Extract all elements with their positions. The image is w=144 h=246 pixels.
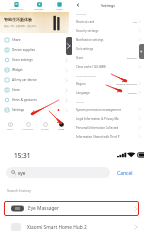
button[interactable]: Search xyxy=(54,1,65,12)
staticText: Product Info xyxy=(10,8,23,11)
button[interactable]: Notification settings xyxy=(72,35,144,44)
button[interactable]: Product Info xyxy=(8,1,25,12)
button[interactable]: Store xyxy=(72,53,144,62)
staticText: Xiaomi Smart Home Hub 2 xyxy=(27,224,87,231)
button[interactable]: Device supplies xyxy=(0,45,72,55)
staticText: Device xyxy=(7,128,14,131)
button[interactable]: Feedback xyxy=(139,44,144,59)
button[interactable]: Legal Information & Privacy Ma xyxy=(72,114,144,123)
button[interactable]: Information Shared with Third P xyxy=(72,132,144,141)
button[interactable]: eye xyxy=(6,167,110,178)
button[interactable]: Eye Massager xyxy=(0,201,144,216)
staticText: Language xyxy=(76,91,90,95)
staticText: Automation xyxy=(22,128,34,131)
staticText: Eye Massager xyxy=(28,205,60,212)
staticText: Privacy xyxy=(76,100,84,103)
button[interactable]: Device xyxy=(6,122,15,131)
button[interactable]: Clear cache (126.6MB) xyxy=(72,62,144,71)
staticText: Search history xyxy=(7,188,31,193)
staticText: Share xyxy=(12,38,21,42)
staticText: Security settings xyxy=(76,29,99,33)
staticText: Unit settings xyxy=(76,47,94,51)
staticText: Legal Information & Privacy Ma xyxy=(76,117,119,121)
staticText: Common xyxy=(76,12,87,15)
staticText: Widget xyxy=(12,68,23,72)
staticText: Clear cache (126.6MB) xyxy=(76,65,106,69)
button[interactable]: Security settings xyxy=(72,26,144,35)
button[interactable]: Language xyxy=(72,88,144,97)
staticText: Language/Region xyxy=(76,74,96,77)
staticText: Voice settings xyxy=(12,58,33,62)
staticText: Favorites xyxy=(34,8,44,11)
button[interactable]: Unit settings xyxy=(72,44,144,53)
staticText: Shortcut card xyxy=(76,20,95,24)
button[interactable]: Profile xyxy=(57,122,66,131)
button[interactable]: Voice settings xyxy=(0,55,72,65)
staticText: Settings xyxy=(12,108,25,112)
staticText: 15:31 xyxy=(14,151,31,160)
staticText: Chinese Mainland xyxy=(116,82,137,85)
button[interactable]: Settings xyxy=(0,105,72,115)
staticText: Discover xyxy=(41,128,50,131)
button[interactable]: Widget xyxy=(0,65,72,75)
staticText: 智能生活新体验 xyxy=(4,17,32,22)
staticText: eye xyxy=(18,170,26,176)
button[interactable]: Discover xyxy=(40,122,51,131)
button[interactable]: Xiaomi Smart Home Hub 2 xyxy=(0,219,144,235)
staticText: Settings xyxy=(101,3,115,8)
button[interactable]: All my car device xyxy=(0,75,72,85)
staticText: Information Shared with Third P xyxy=(76,135,120,139)
button[interactable]: Region xyxy=(72,79,144,88)
button[interactable]: Cancel xyxy=(115,168,135,179)
button[interactable]: Shortcut card xyxy=(72,17,144,26)
staticText: Store xyxy=(12,88,20,92)
button[interactable]: Hints & gestures xyxy=(0,95,72,105)
button[interactable]: Back xyxy=(75,2,81,8)
staticText: 轻松一键 · 全屋智能 · 尽在此中 xyxy=(4,24,37,27)
button[interactable]: Collapse panel xyxy=(66,37,72,55)
staticText: Hints & gestures xyxy=(12,98,37,102)
button[interactable]: Favorites xyxy=(32,1,46,12)
button[interactable]: System permission management xyxy=(72,105,144,114)
button[interactable]: Share xyxy=(0,35,72,45)
staticText: Off xyxy=(133,20,137,23)
staticText: Profile xyxy=(58,128,65,131)
staticText: Notification settings xyxy=(76,38,104,42)
button[interactable]: 智能生活新体验 xyxy=(0,12,69,33)
staticText: English xyxy=(128,91,137,94)
staticText: Region xyxy=(76,82,86,86)
staticText: System permission management xyxy=(76,108,121,112)
button[interactable]: Store xyxy=(0,85,72,95)
staticText: Personal Information Collected xyxy=(76,126,119,130)
staticText: All my car device xyxy=(12,78,37,82)
staticText: Device supplies xyxy=(12,48,36,52)
button[interactable]: Personal Information Collected xyxy=(72,123,144,132)
staticText: Enabled xyxy=(127,56,137,59)
staticText: Search xyxy=(56,8,63,11)
button[interactable]: Automation xyxy=(21,122,35,131)
staticText: Cancel xyxy=(117,170,133,177)
staticText: Store xyxy=(76,56,84,60)
